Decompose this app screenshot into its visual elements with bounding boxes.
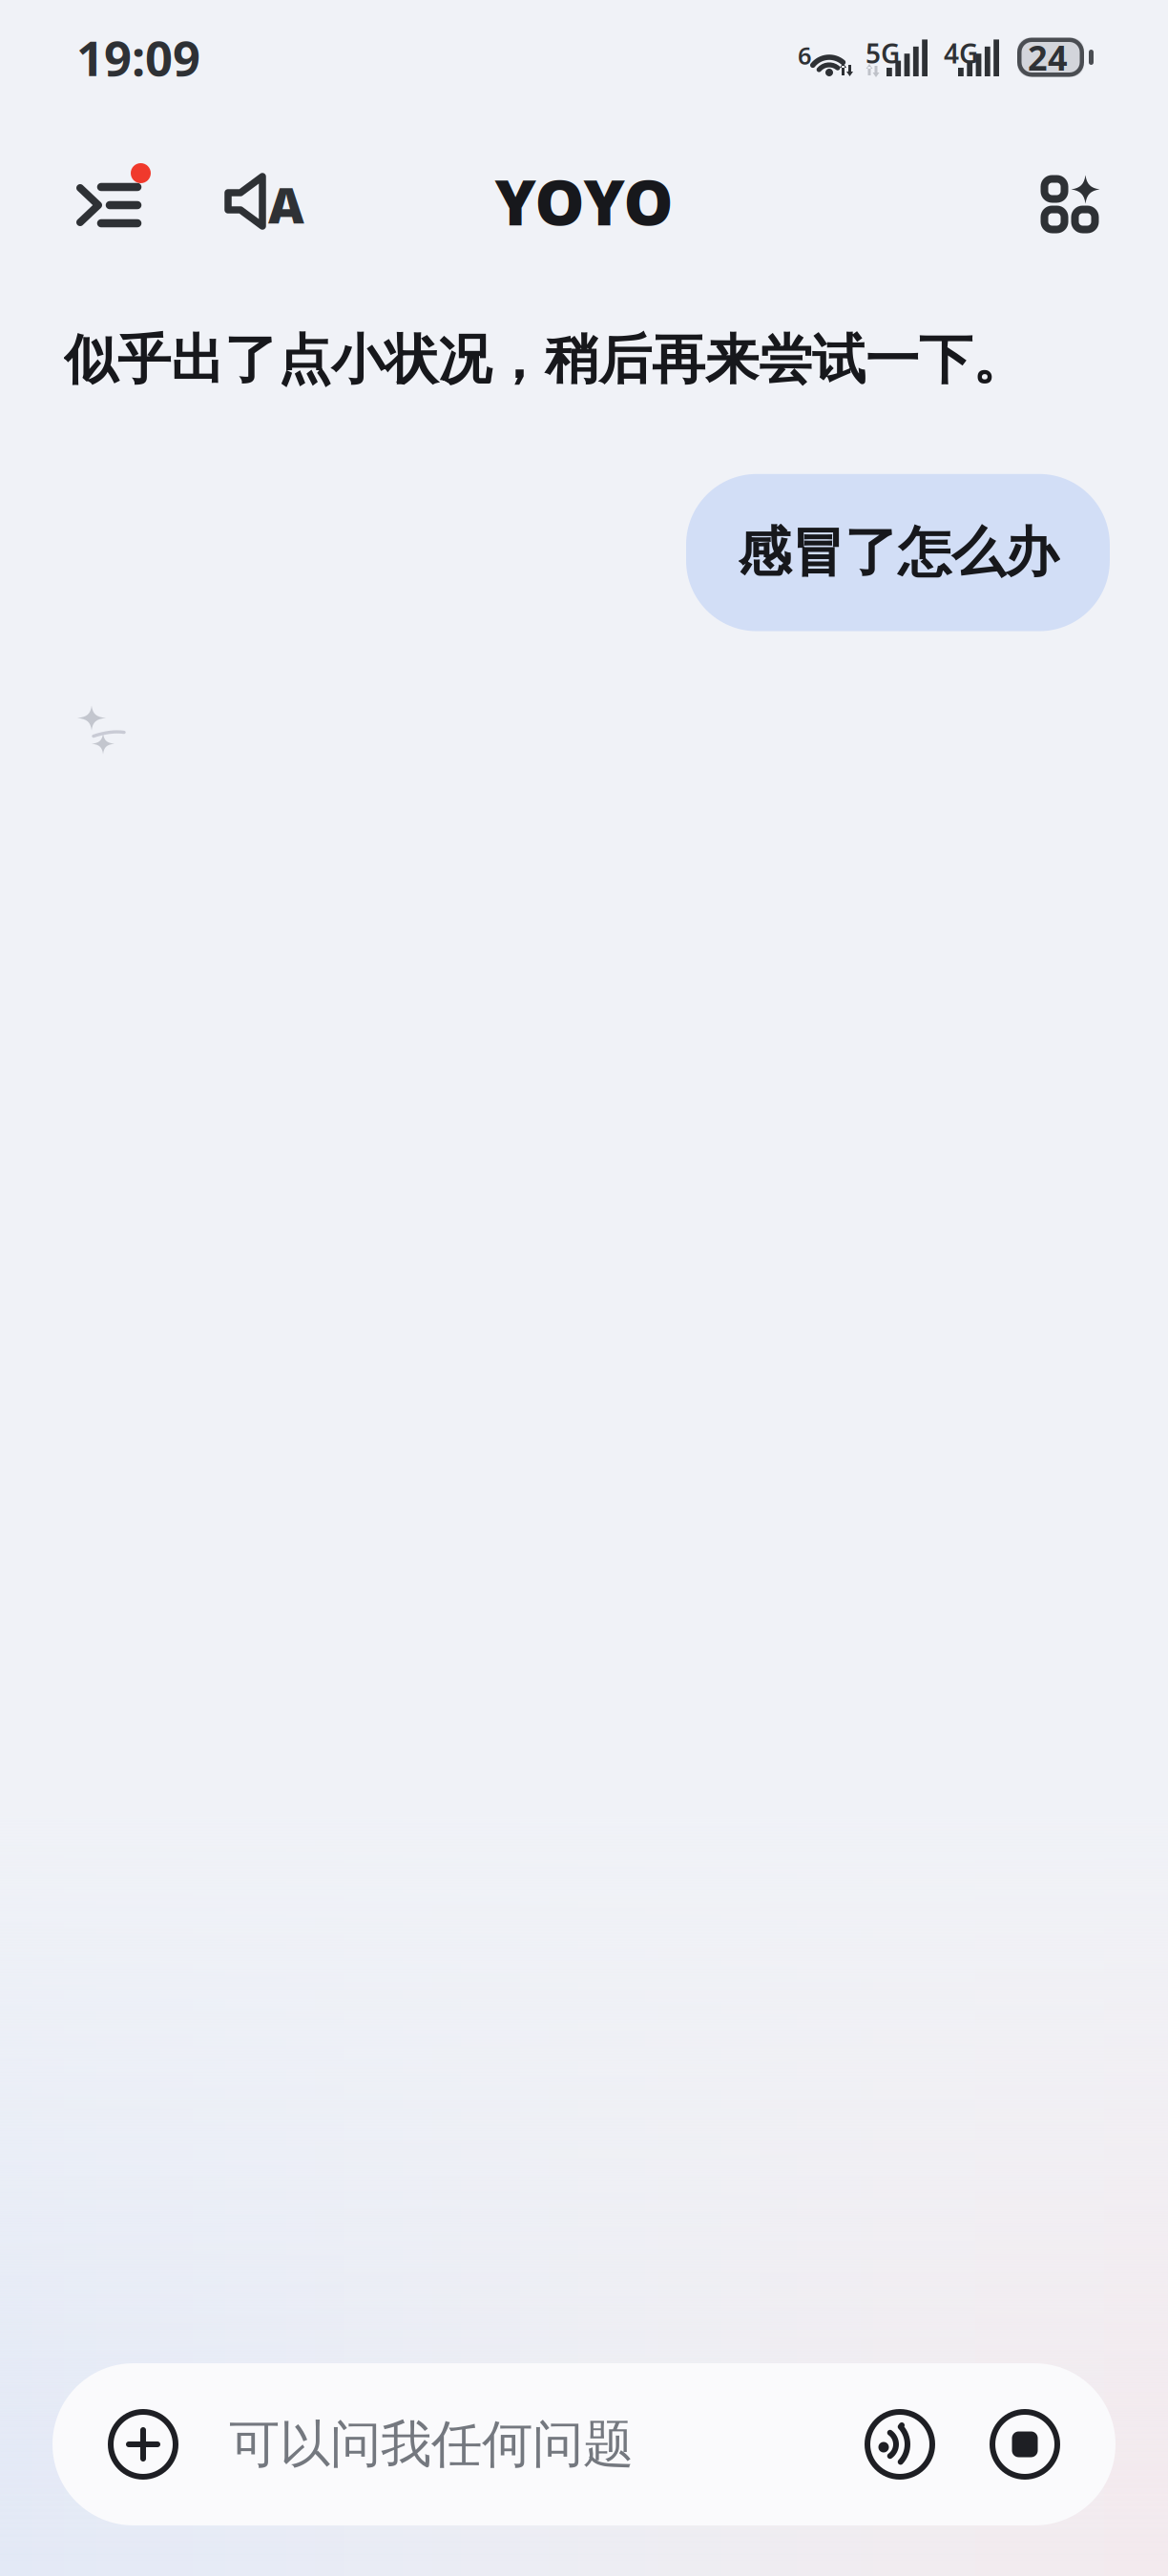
staticText: YOYO [495,160,673,243]
staticText: 感冒了怎么办 [738,520,1058,585]
button[interactable]: Chat history [0,114,170,227]
staticText: 5G [866,35,900,71]
button[interactable]: Add attachment [80,2363,206,2525]
button[interactable]: Voice auto play [0,114,305,227]
staticText: A [268,171,304,237]
button[interactable]: Voice input [827,2363,972,2525]
button[interactable]: Discover apps [1015,114,1168,227]
staticText: 4G [944,35,978,71]
button[interactable]: Stop [972,2363,1077,2525]
staticText: 6 [798,39,811,71]
staticText: 似乎出了点小状况，稍后再来尝试一下。 [64,327,1026,393]
staticText: 19:09 [76,25,200,89]
staticText: 可以问我任何问题 [229,2413,634,2476]
staticText: 24 [1028,34,1068,80]
